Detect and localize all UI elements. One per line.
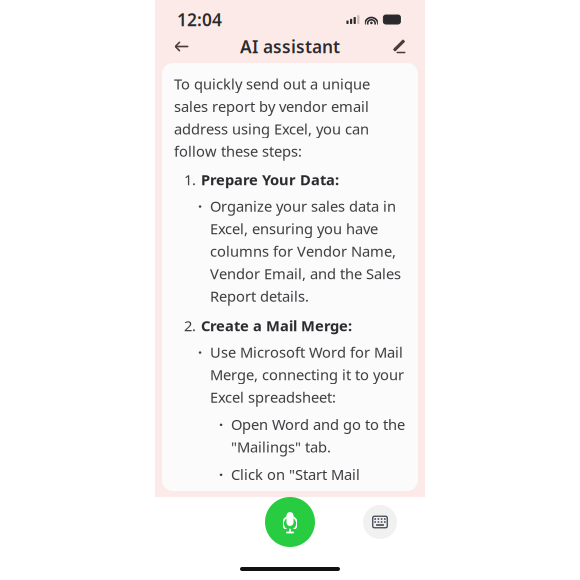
- staticText: ·: [198, 342, 202, 362]
- staticText: 1.: [184, 170, 196, 189]
- staticText: ·: [219, 465, 223, 484]
- button[interactable]: Keyboard: [363, 505, 397, 539]
- staticText: Open Word and go to the "Mailings" tab.: [231, 415, 405, 457]
- button[interactable]: Back: [166, 31, 196, 61]
- staticText: Prepare Your Data:: [201, 170, 339, 189]
- staticText: 2.: [184, 316, 196, 335]
- staticText: AI assistant: [240, 35, 340, 58]
- staticText: Organize your sales data in Excel, ensur…: [210, 196, 401, 306]
- staticText: ·: [198, 196, 202, 216]
- staticText: ·: [219, 415, 223, 434]
- staticText: To quickly send out a unique sales repor…: [174, 74, 370, 161]
- button[interactable]: New chat: [384, 31, 414, 61]
- staticText: Click on "Select Recipients" and choose …: [231, 537, 395, 580]
- staticText: Use Microsoft Word for Mail Merge, conne…: [210, 342, 404, 407]
- staticText: Click on "Start Mail Merge" and select "…: [231, 465, 402, 529]
- button[interactable]: Record voice message: [265, 497, 315, 547]
- staticText: Create a Mail Merge:: [201, 316, 352, 335]
- staticText: 12:04: [177, 8, 222, 31]
